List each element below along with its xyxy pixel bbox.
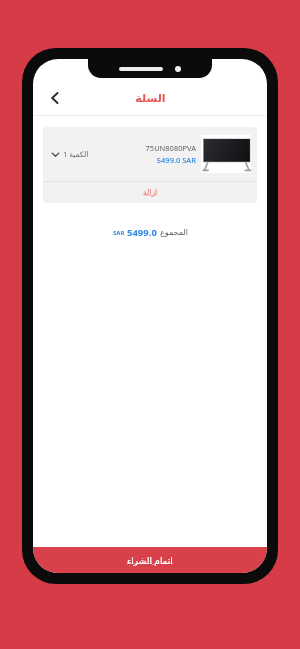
button[interactable]: اتمام الشراء [33, 547, 267, 573]
staticText: ازالة [143, 188, 158, 197]
staticText: 1 الكمية [63, 149, 89, 159]
staticText: المجموع [160, 228, 188, 237]
button[interactable]: 1 الكمية [43, 127, 257, 181]
staticText: SAR [113, 229, 125, 237]
button[interactable]: ازالة [43, 182, 257, 203]
staticText: 5499.0 SAR [156, 155, 196, 165]
staticText: السلة [135, 92, 166, 105]
button[interactable]: Back [39, 82, 71, 114]
staticText: 75UN8080PVA [145, 143, 196, 153]
staticText: 5499.0 [127, 226, 157, 239]
staticText: اتمام الشراء [127, 554, 173, 566]
